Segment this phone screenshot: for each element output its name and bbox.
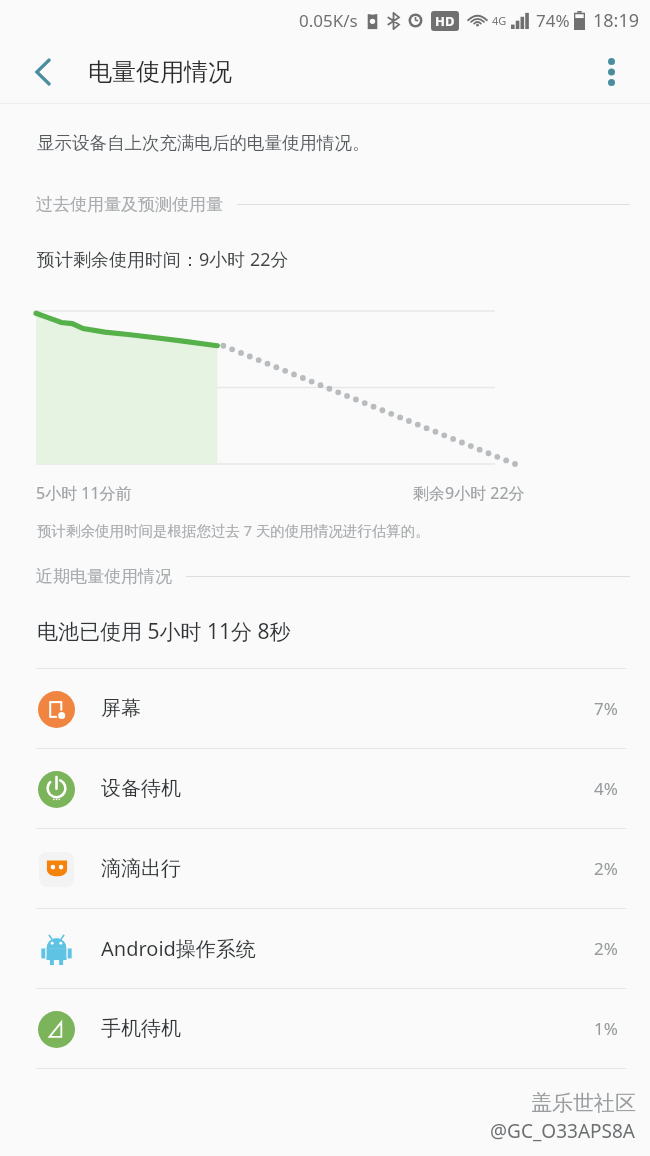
- staticText: 4G: [492, 13, 507, 28]
- staticText: 预计剩余使用时间：9小时 22分: [37, 247, 289, 272]
- staticText: 手机待机: [101, 1016, 181, 1041]
- staticText: 5小时 11分前: [36, 482, 132, 504]
- staticText: 近期电量使用情况: [36, 566, 172, 587]
- staticText: 4%: [594, 777, 618, 800]
- staticText: 屏幕: [101, 696, 141, 721]
- staticText: 74%: [536, 9, 570, 32]
- staticText: HD: [435, 12, 455, 30]
- staticText: 剩余9小时 22分: [413, 482, 525, 504]
- staticText: @GC_O33APS8A: [490, 1118, 636, 1144]
- button[interactable]: Back: [14, 43, 72, 101]
- staticText: 电池已使用 5小时 11分 8秒: [37, 617, 291, 646]
- staticText: 18:19: [593, 8, 640, 33]
- button[interactable]: 设备待机: [0, 749, 650, 828]
- staticText: 2%: [594, 857, 618, 880]
- staticText: 盖乐世社区: [531, 1090, 636, 1116]
- staticText: 设备待机: [101, 776, 181, 801]
- button[interactable]: 屏幕: [0, 669, 650, 748]
- staticText: Android操作系统: [101, 935, 256, 962]
- button[interactable]: 手机待机: [0, 989, 650, 1068]
- staticText: 2%: [594, 937, 618, 960]
- button[interactable]: More options: [584, 45, 638, 99]
- staticText: 电量使用情况: [88, 57, 232, 87]
- staticText: 0.05K/s: [299, 9, 358, 32]
- staticText: 预计剩余使用时间是根据您过去 7 天的使用情况进行估算的。: [37, 520, 430, 540]
- staticText: 滴滴出行: [101, 856, 181, 881]
- button[interactable]: 滴滴出行: [0, 829, 650, 908]
- staticText: 显示设备自上次充满电后的电量使用情况。: [37, 132, 370, 154]
- staticText: 1%: [594, 1017, 618, 1040]
- staticText: 7%: [594, 697, 618, 720]
- staticText: 过去使用量及预测使用量: [36, 194, 223, 215]
- button[interactable]: Android操作系统: [0, 909, 650, 988]
